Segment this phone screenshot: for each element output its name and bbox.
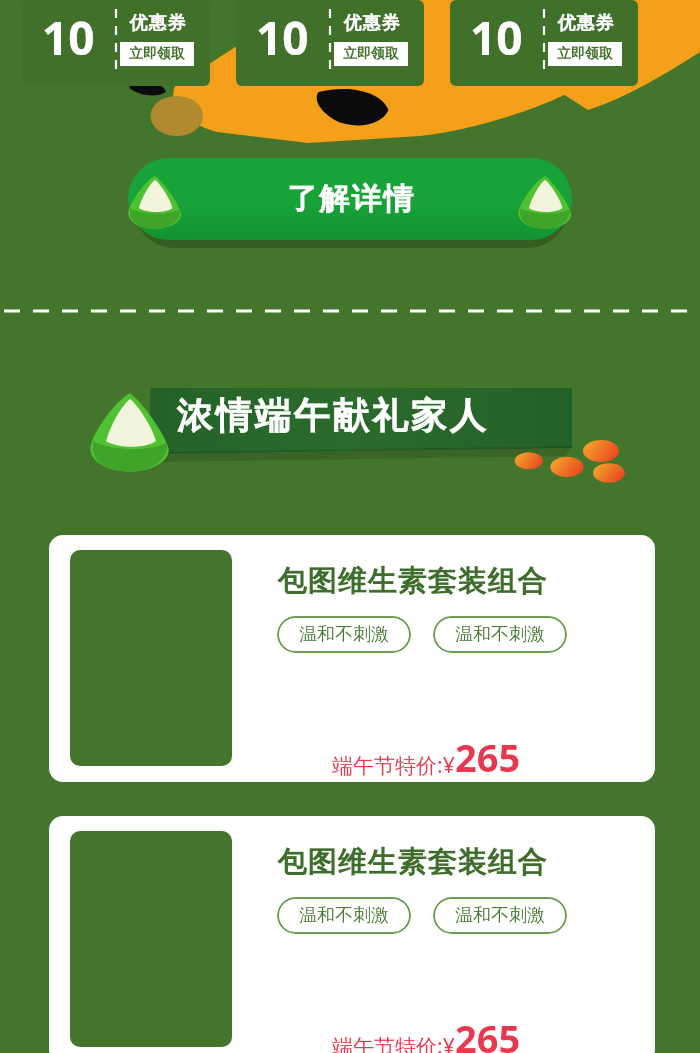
- staticText: 包图维生素套装组合: [277, 844, 547, 881]
- staticText: 温和不刺激: [455, 904, 545, 927]
- staticText: 温和不刺激: [299, 623, 389, 646]
- staticText: 优惠券: [129, 12, 186, 35]
- button[interactable]: 温和不刺激: [299, 904, 389, 927]
- staticText: 了解详情: [286, 180, 414, 218]
- staticText: 端午节特价:¥: [332, 751, 455, 780]
- staticText: 优惠券: [343, 12, 400, 35]
- staticText: 端午节特价:¥: [332, 1032, 455, 1053]
- button[interactable]: 包图维生素套装组合: [49, 816, 655, 1053]
- staticText: 立即领取: [557, 45, 613, 63]
- staticText: 立即领取: [129, 45, 185, 63]
- button[interactable]: 温和不刺激: [299, 623, 389, 646]
- button[interactable]: 立即领取: [129, 45, 185, 63]
- button[interactable]: 10: [450, 0, 638, 86]
- staticText: 浓情端午献礼家人: [175, 393, 487, 438]
- button[interactable]: 10: [22, 0, 210, 86]
- staticText: 10: [42, 6, 95, 69]
- button[interactable]: 了解详情: [128, 158, 572, 246]
- staticText: 包图维生素套装组合: [277, 563, 547, 600]
- staticText: 10: [470, 6, 523, 69]
- button[interactable]: 温和不刺激: [455, 904, 545, 927]
- button[interactable]: 10: [236, 0, 424, 86]
- staticText: 温和不刺激: [299, 904, 389, 927]
- button[interactable]: 包图维生素套装组合: [49, 535, 655, 782]
- staticText: 立即领取: [343, 45, 399, 63]
- button[interactable]: 立即领取: [557, 45, 613, 63]
- staticText: 265: [455, 1012, 521, 1053]
- button[interactable]: 立即领取: [343, 45, 399, 63]
- staticText: 温和不刺激: [455, 623, 545, 646]
- staticText: 265: [455, 731, 521, 782]
- staticText: 优惠券: [557, 12, 614, 35]
- staticText: 10: [256, 6, 309, 69]
- button[interactable]: 温和不刺激: [455, 623, 545, 646]
